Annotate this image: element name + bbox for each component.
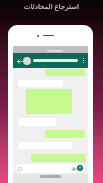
button[interactable]: Back	[13, 53, 88, 68]
button[interactable]: Camera	[71, 166, 76, 171]
button[interactable]: Back	[16, 58, 22, 64]
button[interactable]	[45, 69, 85, 76]
button[interactable]: Camera	[16, 164, 78, 173]
button[interactable]	[31, 154, 86, 162]
button[interactable]: More options	[80, 53, 86, 68]
button[interactable]: Send voice message	[77, 165, 83, 171]
button[interactable]	[45, 130, 85, 138]
staticText: استرجاع المحادثات	[24, 2, 79, 12]
